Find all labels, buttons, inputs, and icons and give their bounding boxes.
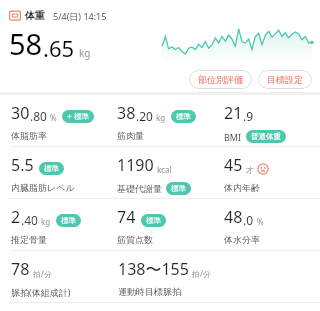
staticText: 脈拍(体組成計) (11, 286, 71, 298)
staticText: 標準 (146, 216, 161, 225)
staticText: .0 (243, 212, 254, 228)
staticText: 78 (11, 258, 30, 280)
staticText: .40 (21, 212, 38, 228)
button[interactable]: 5.5 (0, 154, 106, 198)
staticText: 30 (11, 102, 30, 124)
staticText: 才 (246, 165, 254, 175)
staticText: kcal (157, 164, 172, 175)
staticText: 部位別評価 (198, 74, 243, 85)
staticText: 38 (117, 102, 136, 124)
staticText: 拍/分 (33, 268, 52, 279)
staticText: 体水分率 (224, 234, 260, 245)
button[interactable]: 21 (213, 102, 320, 146)
button[interactable]: 45 (213, 154, 320, 198)
staticText: 体内年齢 (224, 182, 260, 193)
staticText: % (257, 216, 264, 227)
staticText: 拍/分 (192, 268, 211, 279)
button[interactable]: 1190 (106, 154, 213, 198)
other: 体内年齢 評価 (257, 163, 269, 175)
button[interactable]: 38 (106, 102, 213, 146)
staticText: kg (79, 46, 91, 60)
staticText: 標準 (176, 112, 191, 121)
staticText: .80 (30, 108, 47, 124)
staticText: 標準 (44, 164, 59, 173)
staticText: 推定骨量 (11, 234, 47, 245)
staticText: 58 (9, 24, 43, 63)
staticText: 内臓脂肪レベル (11, 182, 75, 193)
staticText: .9 (243, 108, 254, 124)
button[interactable]: 30 (0, 102, 106, 146)
staticText: 標準 (74, 112, 89, 121)
staticText: 5.5 (11, 154, 34, 176)
staticText: 74 (117, 206, 136, 228)
button[interactable]: 2 (0, 206, 106, 250)
staticText: 体重 (25, 9, 45, 22)
staticText: 21 (224, 102, 243, 124)
staticText: 運動時目標脈拍 (118, 286, 181, 297)
staticText: 1190 (117, 154, 154, 176)
staticText: 目標設定 (267, 74, 303, 85)
button[interactable]: 138〜155 (107, 258, 320, 302)
staticText: 筋質点数 (117, 234, 153, 245)
staticText: 48 (224, 206, 243, 228)
button[interactable]: 目標設定 (258, 70, 312, 89)
staticText: .65 (43, 33, 75, 63)
button[interactable]: 部位別評価 (189, 70, 252, 89)
staticText: 基礎代謝量 (117, 183, 162, 194)
staticText: 45 (224, 154, 243, 176)
staticText: 筋肉量 (117, 130, 144, 141)
staticText: kg (156, 112, 166, 123)
staticText: 138〜155 (118, 258, 189, 280)
staticText: 標準 (171, 184, 186, 193)
staticText: kg (41, 216, 51, 227)
staticText: 体脂肪率 (11, 130, 47, 141)
staticText: 標準 (61, 216, 76, 225)
button[interactable]: 78 (0, 258, 107, 302)
staticText: .20 (136, 108, 153, 124)
staticText: 2 (11, 206, 21, 228)
staticText: % (50, 112, 57, 123)
staticText: 5/4(日) 14:15 (53, 10, 107, 22)
button[interactable]: 74 (106, 206, 213, 250)
staticText: 普通体重 (251, 132, 281, 141)
staticText: BMI (224, 131, 242, 143)
button[interactable]: 48 (213, 206, 320, 250)
